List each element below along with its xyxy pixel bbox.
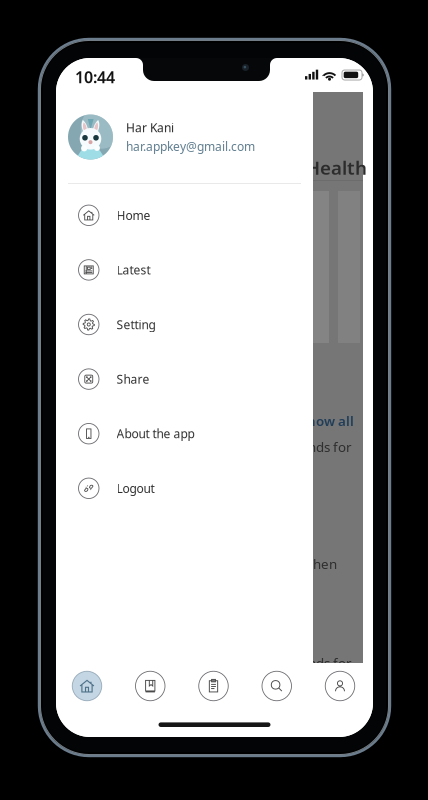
button[interactable]: About the app bbox=[56, 406, 313, 461]
staticText: 10:44 bbox=[75, 66, 115, 88]
staticText: Show all bbox=[300, 412, 354, 430]
button[interactable]: Latest bbox=[125, 663, 175, 709]
staticText: Share bbox=[116, 371, 149, 387]
staticText: ends for bbox=[300, 654, 352, 672]
button[interactable]: Search bbox=[252, 663, 302, 709]
staticText: ends for bbox=[300, 438, 352, 456]
staticText: About the app bbox=[116, 426, 194, 442]
button[interactable]: Logout bbox=[56, 461, 313, 516]
button[interactable]: Har Kani bbox=[56, 92, 313, 183]
staticText: Latest bbox=[116, 262, 150, 278]
button[interactable]: Setting bbox=[56, 297, 313, 352]
button[interactable]: Profile bbox=[315, 663, 365, 709]
button[interactable]: Home bbox=[62, 663, 112, 709]
staticText: When bbox=[301, 555, 337, 573]
button[interactable]: Home bbox=[56, 188, 313, 243]
staticText: Har Kani bbox=[126, 120, 174, 135]
button[interactable]: Notes bbox=[188, 663, 238, 709]
button[interactable]: Latest bbox=[56, 243, 313, 297]
button[interactable]: Share bbox=[56, 352, 313, 406]
staticText: Home bbox=[116, 207, 150, 223]
staticText: Logout bbox=[116, 480, 154, 496]
staticText: har.appkey@gmail.com bbox=[126, 138, 255, 154]
staticText: Setting bbox=[116, 316, 155, 332]
staticText: Health bbox=[306, 155, 367, 180]
